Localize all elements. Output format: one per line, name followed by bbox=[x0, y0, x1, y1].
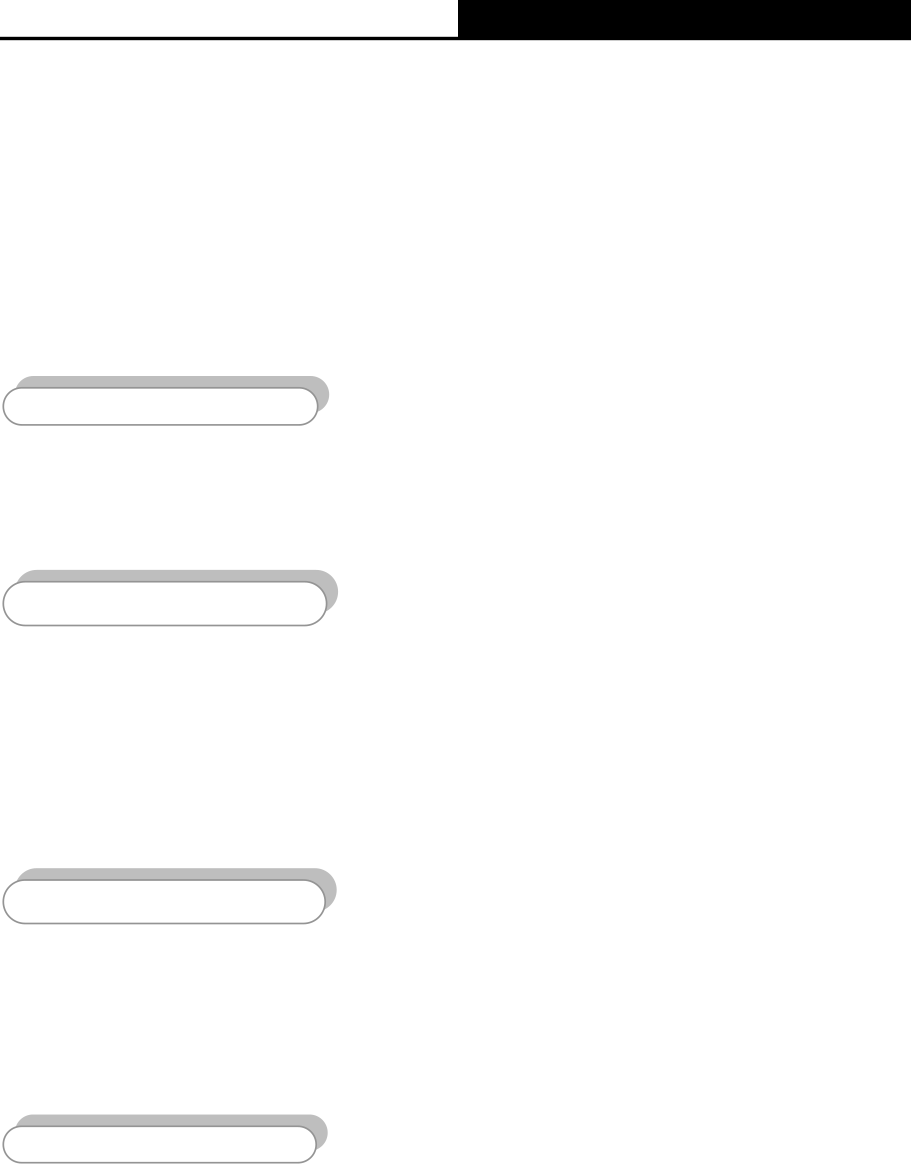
button[interactable]: Row one bbox=[3, 388, 329, 425]
button[interactable]: Row two bbox=[3, 582, 338, 625]
button[interactable]: Row four bbox=[3, 1126, 328, 1163]
button[interactable]: Row three bbox=[3, 880, 337, 923]
